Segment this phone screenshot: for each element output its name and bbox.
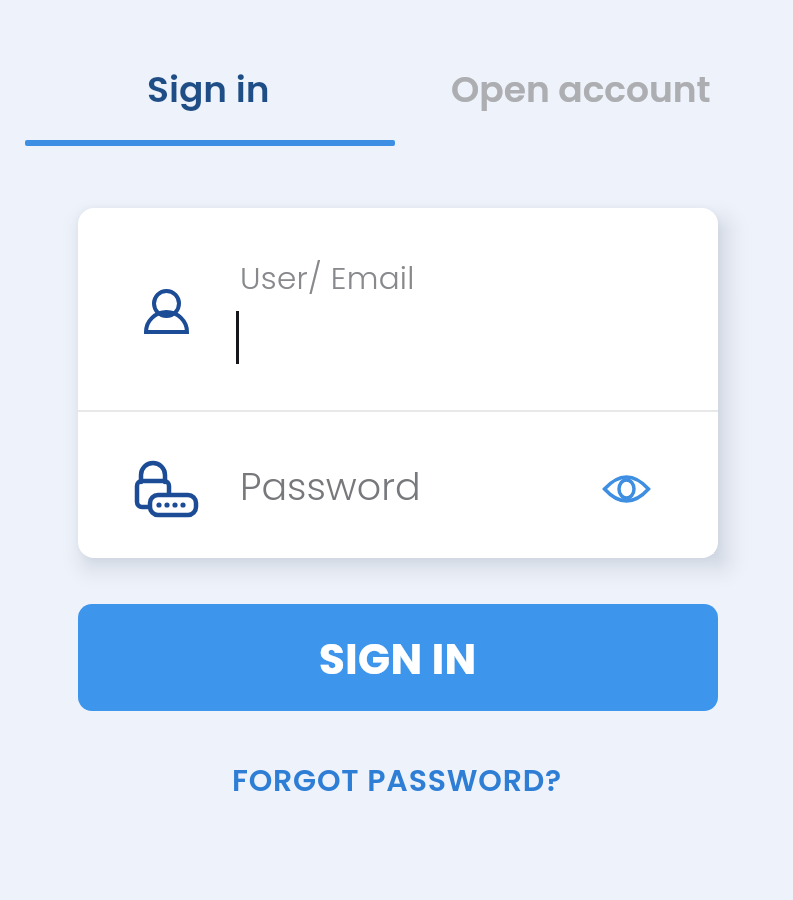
staticText: Password [240,460,421,513]
button[interactable]: FORGOT PASSWORD? [0,751,793,811]
button[interactable] [603,474,650,504]
button[interactable]: SIGN IN [78,604,718,711]
staticText: User/ Email [240,256,415,299]
staticText: Open account [451,64,711,114]
staticText: FORGOT PASSWORD? [232,760,562,802]
staticText: SIGN IN [319,630,477,689]
staticText: Sign in [147,64,270,114]
button[interactable]: Sign in [0,28,396,150]
button[interactable]: Open account [396,28,793,150]
button[interactable] [78,412,718,558]
button[interactable] [78,208,718,410]
